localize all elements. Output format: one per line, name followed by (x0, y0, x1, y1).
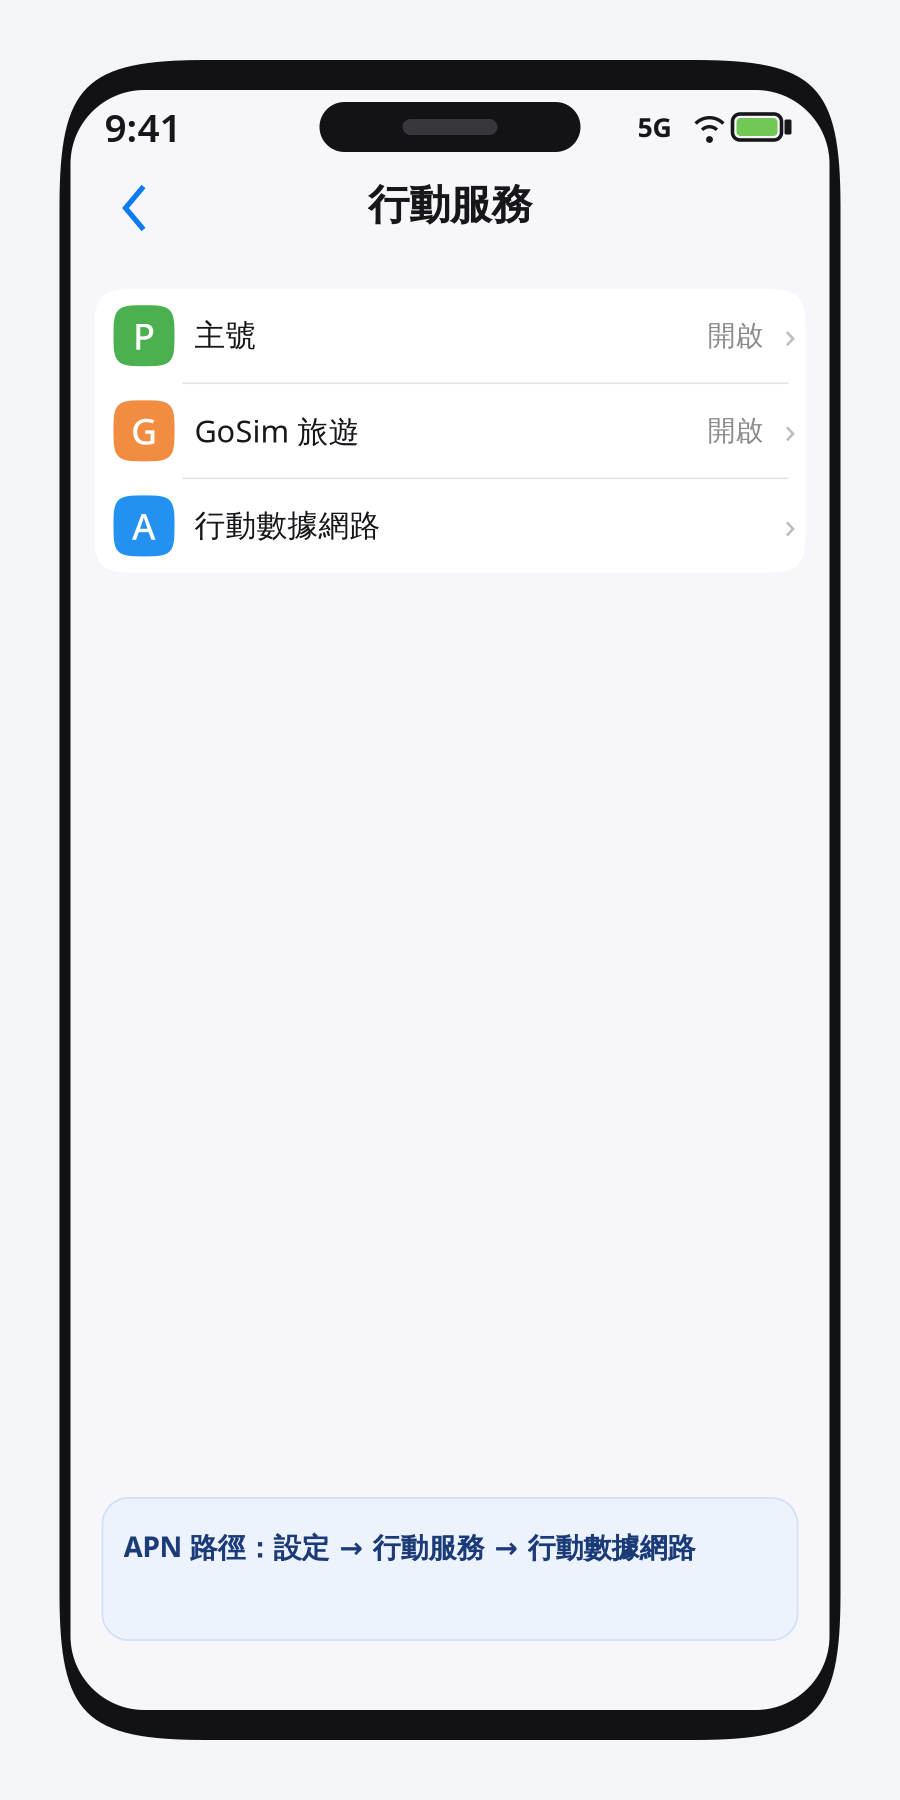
staticText: P (133, 312, 155, 360)
staticText: APN 路徑：設定 → 行動服務 → 行動數據網路 (123, 1528, 695, 1565)
button[interactable]: G (94, 384, 805, 477)
staticText: 開啟 (707, 318, 763, 353)
button[interactable]: 返回 (102, 178, 166, 232)
staticText: A (132, 502, 156, 550)
staticText: 行動服務 (368, 180, 532, 230)
staticText: 主號 (194, 317, 256, 355)
staticText: 5G (637, 109, 671, 145)
staticText: G (131, 407, 157, 455)
button[interactable]: A (94, 479, 805, 573)
staticText: 9:41 (104, 101, 181, 153)
button[interactable]: P (94, 289, 805, 382)
staticText: GoSim 旅遊 (194, 410, 359, 451)
staticText: 開啟 (707, 414, 763, 448)
staticText: 行動數據網路 (194, 507, 380, 545)
